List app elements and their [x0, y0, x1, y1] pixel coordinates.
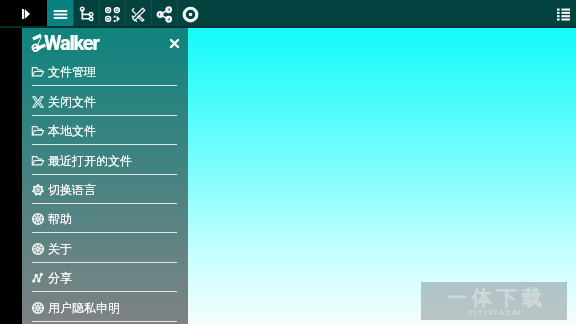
staticText: 帮助: [48, 211, 72, 226]
staticText: 最近打开的文件: [48, 153, 132, 168]
button[interactable]: Scan code: [99, 0, 125, 28]
button[interactable]: 本地文件: [22, 116, 188, 145]
button[interactable]: 最近打开的文件: [22, 146, 188, 175]
staticText: 一体下载: [444, 286, 544, 311]
staticText: 切换语言: [48, 182, 96, 197]
staticText: 本地文件: [48, 123, 96, 138]
button[interactable]: 分享: [22, 263, 188, 292]
button[interactable]: Share: [151, 0, 177, 28]
button[interactable]: 关闭文件: [22, 87, 188, 116]
staticText: 分享: [48, 270, 72, 285]
staticText: YITIXIAZAI: [468, 308, 523, 317]
button[interactable]: Structure: [73, 0, 99, 28]
button[interactable]: Close drawer: [164, 33, 184, 53]
button[interactable]: 文件管理: [22, 57, 188, 86]
staticText: Walker: [44, 31, 99, 54]
staticText: 关闭文件: [48, 94, 96, 109]
button[interactable]: 切换语言: [22, 175, 188, 204]
staticText: 文件管理: [48, 64, 96, 79]
button[interactable]: Expand sidebar: [0, 0, 47, 28]
staticText: 用户隐私申明: [48, 300, 120, 315]
button[interactable]: List view: [550, 0, 576, 28]
staticText: 关于: [48, 241, 72, 256]
button[interactable]: 关于: [22, 234, 188, 263]
button[interactable]: Menu: [47, 0, 73, 28]
button[interactable]: Measure tools: [125, 0, 151, 28]
button[interactable]: 用户隐私申明: [22, 293, 188, 322]
button[interactable]: Record: [177, 0, 203, 28]
button[interactable]: 帮助: [22, 204, 188, 233]
